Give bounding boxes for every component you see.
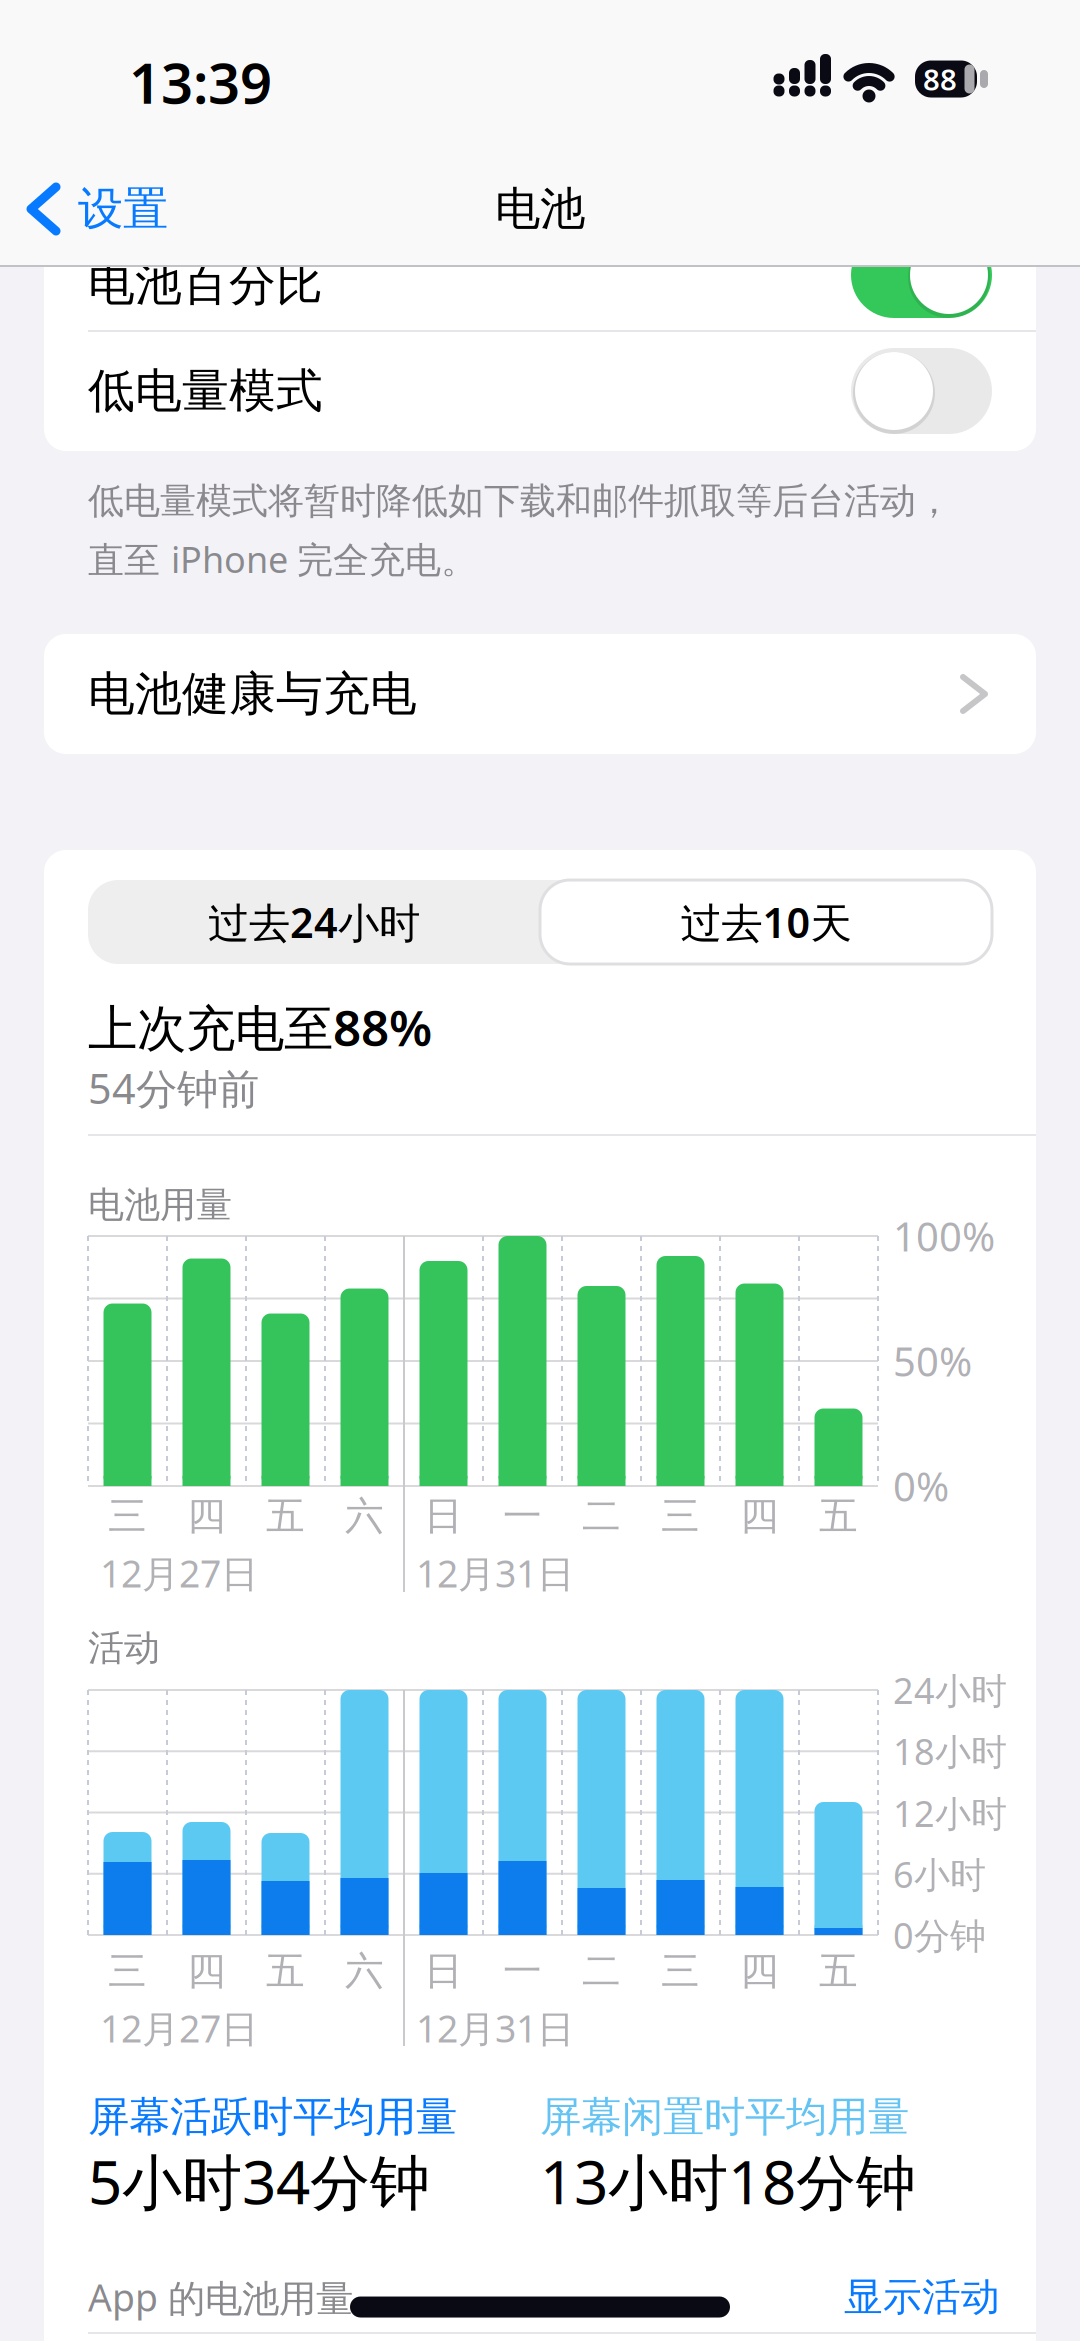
staticText: 五 [819, 1492, 858, 1540]
staticText: 一 [503, 1947, 542, 1995]
staticText: 低电量模式 [88, 362, 323, 420]
staticText: 活动 [88, 1626, 160, 1670]
staticText: 六 [345, 1947, 384, 1995]
staticText: 屏幕闲置时平均用量 [540, 2092, 909, 2142]
staticText: 12月31日 [416, 1548, 574, 1598]
staticText: 电池用量 [88, 1183, 232, 1227]
staticText: 上次充电至88% [88, 994, 432, 1060]
staticText: 五 [266, 1947, 305, 1995]
staticText: 四 [740, 1492, 779, 1540]
staticText: 四 [187, 1492, 226, 1540]
staticText: 三 [661, 1492, 700, 1540]
button[interactable]: 过去24小时 [0, 0, 1080, 2341]
staticText: 过去24小时 [208, 895, 420, 949]
staticText: 四 [187, 1947, 226, 1995]
staticText: 100% [893, 1209, 995, 1262]
staticText: 设置 [78, 181, 168, 237]
staticText: 54分钟前 [88, 1061, 259, 1115]
staticText: 0分钟 [893, 1911, 986, 1959]
staticText: 日 [424, 1492, 463, 1540]
staticText: 二 [582, 1492, 621, 1540]
staticText: 三 [661, 1947, 700, 1995]
staticText: 低电量模式将暂时降低如下载和邮件抓取等后台活动， [88, 479, 952, 523]
staticText: 24小时 [893, 1666, 1007, 1714]
staticText: 五 [819, 1947, 858, 1995]
staticText: 0% [893, 1459, 949, 1512]
staticText: App 的电池用量 [88, 2272, 353, 2322]
button[interactable]: 设置 [0, 0, 1080, 2341]
staticText: 12月27日 [100, 2003, 258, 2053]
staticText: 88 [923, 59, 957, 98]
staticText: 13小时18分钟 [540, 2141, 916, 2221]
staticText: 三 [108, 1947, 147, 1995]
button[interactable] [0, 0, 1080, 2341]
staticText: 直至 iPhone 完全充电。 [88, 535, 477, 583]
staticText: 电池百分比 [88, 255, 323, 313]
staticText: 18小时 [893, 1727, 1007, 1775]
staticText: 过去10天 [680, 895, 851, 949]
button[interactable]: 过去10天 [0, 0, 1080, 2341]
staticText: 12月27日 [100, 1548, 258, 1598]
staticText: 四 [740, 1947, 779, 1995]
staticText: 电池健康与充电 [88, 665, 417, 723]
button[interactable]: 显示活动 [0, 0, 1080, 2341]
staticText: 五 [266, 1492, 305, 1540]
staticText: 三 [108, 1492, 147, 1540]
staticText: 电池 [495, 181, 585, 237]
button[interactable]: 电池健康与充电 [0, 0, 1080, 2341]
staticText: 六 [345, 1492, 384, 1540]
staticText: 12月31日 [416, 2003, 574, 2053]
staticText: 13:39 [129, 45, 272, 119]
staticText: 屏幕活跃时平均用量 [88, 2092, 457, 2142]
staticText: 6小时 [893, 1850, 986, 1898]
staticText: 二 [582, 1947, 621, 1995]
staticText: 50% [893, 1334, 972, 1387]
staticText: 显示活动 [844, 2273, 1000, 2321]
staticText: 12小时 [893, 1789, 1007, 1837]
staticText: 5小时34分钟 [88, 2141, 430, 2221]
staticText: 日 [424, 1947, 463, 1995]
staticText: 一 [503, 1492, 542, 1540]
button[interactable] [0, 0, 1080, 2341]
